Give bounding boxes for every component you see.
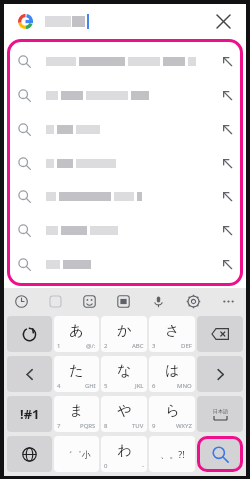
button[interactable]: Symbols xyxy=(7,396,52,432)
button[interactable]: Settings xyxy=(176,288,211,314)
button[interactable]: Cursor left xyxy=(7,356,52,392)
button[interactable] xyxy=(10,114,240,144)
button[interactable]: Emoji xyxy=(72,288,106,314)
button[interactable]: か xyxy=(101,316,147,352)
button[interactable]: Undo xyxy=(7,316,52,352)
staticText: JKL xyxy=(135,382,144,390)
staticText: 0 xyxy=(104,462,108,470)
button[interactable]: わ xyxy=(101,436,147,472)
button[interactable] xyxy=(10,46,240,76)
button[interactable]: た xyxy=(54,356,99,392)
button[interactable]: 、。?! xyxy=(149,436,195,472)
button[interactable]: Stickers xyxy=(38,288,72,314)
staticText: あ xyxy=(69,322,84,340)
button[interactable]: Translate xyxy=(106,288,141,314)
staticText: !#1 xyxy=(20,405,40,423)
staticText: ま xyxy=(69,402,84,420)
staticText: な xyxy=(117,362,132,380)
button[interactable]: は xyxy=(149,356,195,392)
button[interactable]: Space xyxy=(197,396,243,432)
staticText: か xyxy=(117,322,132,340)
staticText: - xyxy=(142,462,144,470)
button[interactable]: や xyxy=(101,396,147,432)
button[interactable]: な xyxy=(101,356,147,392)
button[interactable]: ら xyxy=(149,396,195,432)
staticText: 6 xyxy=(152,382,156,390)
button[interactable]: Clipboard history xyxy=(4,288,38,314)
staticText: MNO xyxy=(177,382,192,390)
staticText: 2 xyxy=(104,342,108,350)
staticText: 8 xyxy=(104,422,108,430)
button[interactable]: さ xyxy=(149,316,195,352)
button[interactable] xyxy=(10,80,240,110)
button[interactable]: Search xyxy=(197,436,243,472)
staticText: DEF xyxy=(181,342,192,350)
staticText: は xyxy=(165,362,180,380)
staticText: ゛゜小 xyxy=(63,449,91,460)
staticText: た xyxy=(69,362,84,380)
button[interactable]: Clear search xyxy=(208,6,238,36)
staticText: WXYZ xyxy=(176,422,192,430)
staticText: 7 xyxy=(57,422,61,430)
staticText: 日本語 xyxy=(213,408,228,414)
staticText: さ xyxy=(165,322,180,340)
button[interactable]: あ xyxy=(54,316,99,352)
staticText: ら xyxy=(165,402,180,420)
button[interactable]: Backspace xyxy=(197,316,243,352)
staticText: TUV xyxy=(132,422,144,430)
button[interactable] xyxy=(10,249,240,279)
button[interactable]: ゛゜小 xyxy=(54,436,99,472)
staticText: わ xyxy=(117,442,132,460)
staticText: GHI xyxy=(85,382,96,390)
button[interactable] xyxy=(10,148,240,178)
button[interactable]: Voice input xyxy=(141,288,176,314)
staticText: 1 xyxy=(57,342,61,350)
button[interactable]: Cursor right xyxy=(197,356,243,392)
staticText: 9 xyxy=(152,422,156,430)
staticText: や xyxy=(117,402,132,420)
staticText: @/: xyxy=(86,342,96,350)
button[interactable]: ま xyxy=(54,396,99,432)
button[interactable]: More xyxy=(211,288,246,314)
button[interactable] xyxy=(10,181,240,211)
button[interactable] xyxy=(10,215,240,245)
staticText: PQRS xyxy=(80,422,96,430)
staticText: 5 xyxy=(104,382,108,390)
staticText: 3 xyxy=(152,342,156,350)
staticText: 、。?! xyxy=(160,448,185,460)
button[interactable]: Switch language xyxy=(7,436,52,472)
staticText: 4 xyxy=(57,382,61,390)
staticText: ABC xyxy=(132,342,144,350)
